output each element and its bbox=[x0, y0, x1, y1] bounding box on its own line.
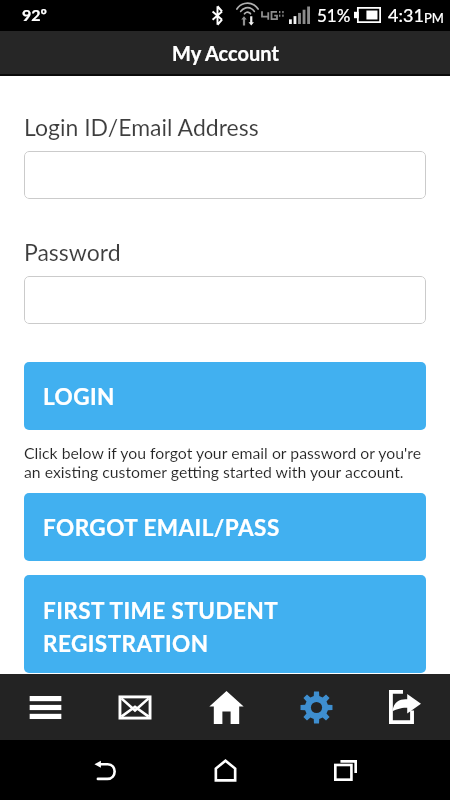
staticText: Password bbox=[24, 238, 121, 266]
button[interactable]: Menu bbox=[0, 674, 90, 740]
button[interactable]: FIRST TIME STUDENT REGISTRATION bbox=[24, 575, 426, 673]
button[interactable] bbox=[24, 151, 426, 199]
button[interactable]: Recent apps bbox=[285, 740, 405, 800]
button[interactable]: Mail bbox=[90, 674, 180, 740]
button[interactable]: Share bbox=[360, 674, 450, 740]
staticText: FIRST TIME STUDENT REGISTRATION bbox=[43, 597, 279, 657]
staticText: My Account bbox=[172, 41, 279, 65]
button[interactable]: Home bbox=[180, 674, 270, 740]
staticText: 92º bbox=[22, 5, 47, 24]
button[interactable]: LOGIN bbox=[24, 362, 426, 430]
staticText: FORGOT EMAIL/PASS bbox=[43, 514, 280, 541]
staticText: Login ID/Email Address bbox=[24, 113, 259, 141]
button[interactable]: Settings bbox=[270, 674, 360, 740]
staticText: 51% bbox=[317, 5, 351, 25]
staticText: PM bbox=[424, 10, 444, 26]
button[interactable]: Back bbox=[45, 740, 165, 800]
button[interactable] bbox=[24, 276, 426, 324]
staticText: Click below if you forgot your email or … bbox=[24, 443, 426, 482]
staticText: LOGIN bbox=[43, 383, 115, 410]
staticText: 4:31 bbox=[388, 4, 424, 26]
button[interactable]: Home bbox=[165, 740, 285, 800]
button[interactable]: FORGOT EMAIL/PASS bbox=[24, 493, 426, 561]
